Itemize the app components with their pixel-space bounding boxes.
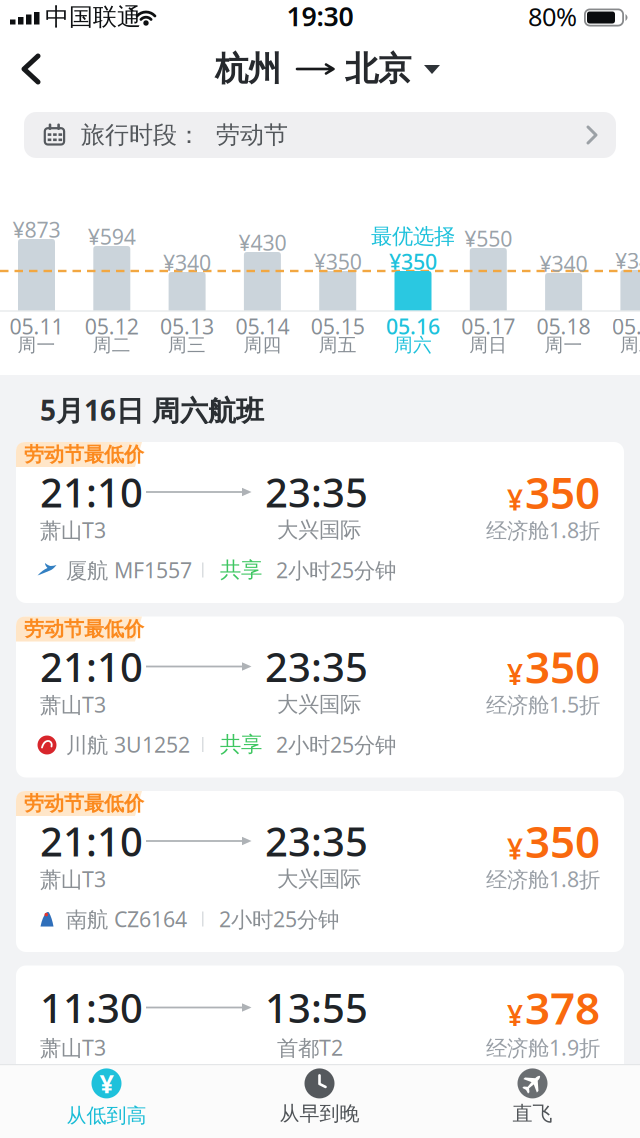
staticText: 周五 xyxy=(319,333,357,356)
staticText: 劳动节 xyxy=(216,120,288,150)
button[interactable]: 05.17 ¥550 xyxy=(452,210,524,360)
staticText: ¥ xyxy=(507,481,523,518)
staticText: 周一 xyxy=(545,333,583,356)
staticText: 萧山T3 xyxy=(40,1033,106,1062)
staticText: 378 xyxy=(525,978,600,1037)
staticText: 周日 xyxy=(469,333,507,356)
staticText: 经济舱1.8折 xyxy=(486,516,600,544)
staticText: 05.19 xyxy=(612,312,640,340)
staticText: 周三 xyxy=(168,333,206,356)
staticText: 从低到高 xyxy=(66,1103,146,1128)
staticText: ¥340 xyxy=(540,249,588,278)
staticText: ¥550 xyxy=(464,224,512,253)
staticText: 劳动节最低价 xyxy=(24,791,144,816)
staticText: 杭州 xyxy=(215,48,281,89)
staticText: 首都T2 xyxy=(277,1033,343,1062)
staticText: 萧山T3 xyxy=(40,516,106,544)
button[interactable]: 05.16 ¥350 xyxy=(377,210,449,360)
staticText: 经济舱1.9折 xyxy=(486,1033,600,1062)
button[interactable]: 11:30 xyxy=(16,965,624,1126)
staticText: 北京 xyxy=(345,48,411,89)
staticText: 05.15 xyxy=(311,312,365,340)
staticText: 11:30 xyxy=(40,981,143,1034)
staticText: 旅行时段： xyxy=(81,120,201,150)
staticText: ¥594 xyxy=(88,222,136,251)
button[interactable]: 05.14 ¥430 xyxy=(226,210,298,360)
button[interactable]: 直飞 xyxy=(426,1065,639,1137)
staticText: ¥873 xyxy=(12,215,60,244)
button[interactable]: 劳动节最低价 xyxy=(16,442,624,603)
staticText: 大兴国际 xyxy=(277,691,361,718)
button[interactable]: 从早到晚 xyxy=(213,1065,426,1137)
staticText: 05.16 xyxy=(386,312,440,340)
staticText: 厦航 MF1557 xyxy=(66,556,192,584)
staticText: ¥350 xyxy=(389,247,437,276)
staticText: ¥340 xyxy=(163,248,211,277)
staticText: 05.14 xyxy=(235,312,289,340)
staticText: 大兴国际 xyxy=(277,866,361,892)
staticText: 周二 xyxy=(93,333,131,356)
button[interactable]: 05.13 ¥340 xyxy=(151,210,223,360)
staticText: 350 xyxy=(525,637,600,696)
staticText: 05.13 xyxy=(160,312,214,340)
staticText: ¥ xyxy=(507,830,523,867)
staticText: 萧山T3 xyxy=(40,865,106,893)
button[interactable]: 05.18 ¥340 xyxy=(528,210,600,360)
staticText: 13:55 xyxy=(265,981,368,1034)
button[interactable]: 杭州 xyxy=(196,44,444,94)
staticText: ¥430 xyxy=(238,228,286,257)
button[interactable]: 05.15 ¥350 xyxy=(302,210,374,360)
staticText: 中国联通 xyxy=(45,2,141,32)
button[interactable]: Back xyxy=(8,48,64,90)
staticText: 南航 CZ6164 xyxy=(66,905,187,933)
staticText: 共享 xyxy=(220,731,262,758)
staticText: 2小时25分钟 xyxy=(276,556,396,584)
staticText: 厦航 MF8112 xyxy=(66,1079,192,1108)
staticText: 萧山T3 xyxy=(40,690,106,719)
staticText: 劳动节最低价 xyxy=(24,617,144,641)
staticText: 周六 xyxy=(394,333,432,356)
staticText: ¥340 xyxy=(615,246,640,275)
staticText: 周四 xyxy=(243,333,281,356)
staticText: 80% xyxy=(528,0,577,33)
staticText: 2小时25分钟 xyxy=(219,905,339,933)
staticText: 经济舱1.5折 xyxy=(486,690,600,719)
staticText: ¥350 xyxy=(314,247,362,276)
staticText: 共享 xyxy=(220,557,262,583)
staticText: 川航 3U1252 xyxy=(66,730,190,759)
staticText: 21:10 xyxy=(40,465,143,518)
staticText: 23:35 xyxy=(265,640,368,693)
button[interactable]: 05.19 ¥340 xyxy=(603,210,640,360)
staticText: 2小时25分钟 xyxy=(276,730,396,759)
staticText: 21:10 xyxy=(40,814,143,867)
staticText: 19:30 xyxy=(286,0,353,34)
staticText: 23:35 xyxy=(265,814,368,867)
staticText: 05.12 xyxy=(85,312,139,340)
staticText: 350 xyxy=(525,463,600,521)
staticText: 大兴国际 xyxy=(277,517,361,543)
button[interactable]: 05.11 ¥873 xyxy=(0,210,72,360)
staticText: 05.18 xyxy=(537,312,591,340)
staticText: 21:10 xyxy=(40,640,143,693)
staticText: 周一 xyxy=(17,333,55,356)
staticText: 从早到晚 xyxy=(279,1101,359,1126)
staticText: 5月16日 周六航班 xyxy=(40,391,264,429)
staticText: 直飞 xyxy=(512,1101,552,1126)
staticText: 05.11 xyxy=(9,312,63,340)
staticText: 350 xyxy=(525,812,600,870)
staticText: ¥ xyxy=(507,996,523,1034)
button[interactable]: 05.12 ¥594 xyxy=(76,210,148,360)
staticText: 劳动节最低价 xyxy=(24,442,144,467)
button[interactable]: 劳动节最低价 xyxy=(16,616,624,777)
staticText: ¥ xyxy=(507,655,523,693)
staticText: 05.17 xyxy=(461,312,515,340)
button[interactable]: 旅行时段： xyxy=(24,112,616,158)
staticText: 最优选择 xyxy=(371,223,455,250)
staticText: ¥ xyxy=(99,1067,113,1100)
staticText: 周二 xyxy=(620,333,640,356)
staticText: 经济舱1.8折 xyxy=(486,865,600,893)
staticText: 2小时25分钟 xyxy=(219,1079,339,1108)
button[interactable]: ¥ xyxy=(0,1065,213,1137)
button[interactable]: 劳动节最低价 xyxy=(16,791,624,952)
staticText: 23:35 xyxy=(265,465,368,518)
